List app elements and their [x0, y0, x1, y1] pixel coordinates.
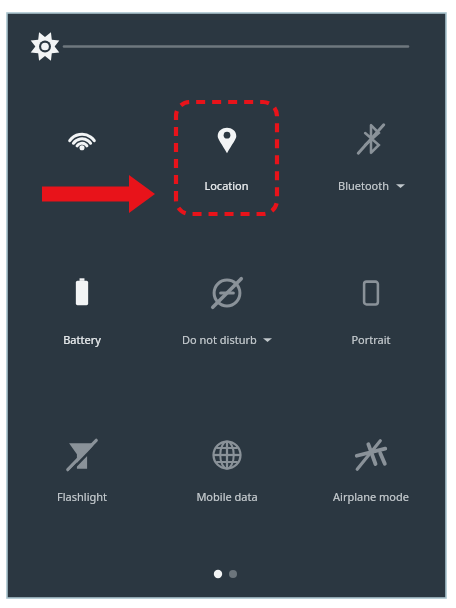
- button[interactable]: Mobile data: [177, 489, 277, 504]
- button[interactable]: Brightness: [26, 32, 420, 62]
- button[interactable]: Do not disturb: [169, 258, 285, 368]
- button[interactable]: Battery: [24, 258, 140, 368]
- staticText: Airplane mode: [333, 489, 409, 504]
- staticText: Flashlight: [57, 489, 107, 504]
- button[interactable]: Flashlight: [24, 420, 140, 530]
- button[interactable]: Portrait: [313, 258, 429, 368]
- staticText: Location: [204, 178, 249, 193]
- button[interactable]: Location: [172, 104, 288, 214]
- staticText: Do not disturb: [182, 332, 257, 347]
- staticText: Bluetooth: [338, 178, 390, 193]
- button[interactable]: Bluetooth: [310, 178, 432, 193]
- button[interactable]: Airplane mode: [311, 489, 431, 504]
- button[interactable]: Portrait: [321, 332, 421, 347]
- button[interactable]: Location: [176, 178, 277, 193]
- button[interactable]: Flashlight: [32, 489, 132, 504]
- button[interactable]: Do not disturb: [160, 332, 294, 347]
- staticText: Mobile data: [196, 489, 258, 504]
- button[interactable]: Mobile data: [169, 420, 285, 530]
- button[interactable]: Battery: [32, 332, 132, 347]
- staticText: Portrait: [351, 332, 391, 347]
- staticText: Battery: [63, 332, 101, 347]
- button[interactable]: Airplane mode: [313, 420, 429, 530]
- button[interactable]: Wi-Fi: [24, 104, 140, 214]
- button[interactable]: Bluetooth: [313, 104, 429, 214]
